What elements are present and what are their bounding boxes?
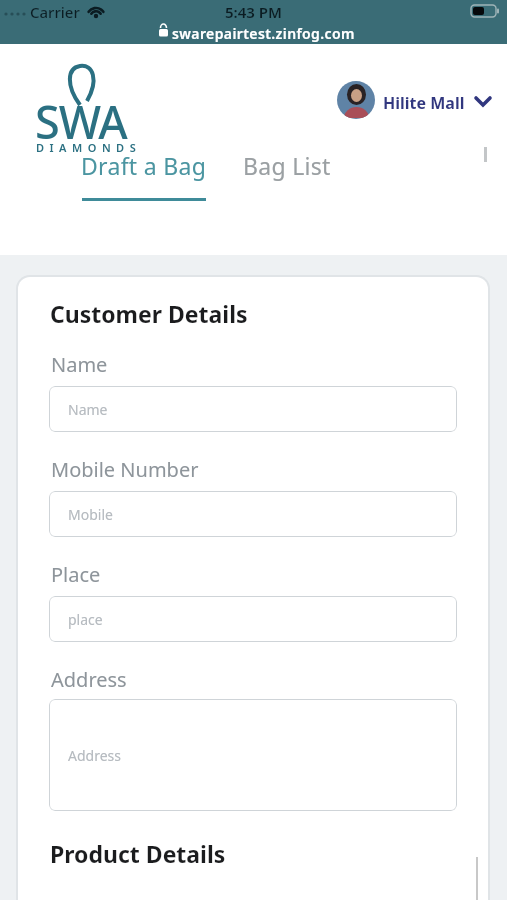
staticText: swarepairtest.zinfog.com [172, 24, 355, 43]
staticText: Hilite Mall [383, 92, 465, 114]
staticText: Draft a Bag [81, 150, 207, 181]
staticText: SWA [35, 91, 127, 152]
staticText: 5:43 PM [225, 2, 282, 22]
staticText: Mobile Number [51, 456, 199, 483]
staticText: Bag List [243, 150, 331, 181]
staticText: Place [51, 561, 101, 588]
staticText: Address [68, 746, 121, 765]
button[interactable]: Draft a Bag [74, 149, 214, 181]
staticText: Name [51, 351, 108, 378]
staticText: Customer Details [50, 298, 248, 329]
staticText: Address [51, 666, 127, 693]
staticText: Name [68, 400, 108, 419]
button[interactable]: Mobile [49, 491, 457, 537]
button[interactable] [337, 81, 375, 119]
staticText: Mobile [68, 505, 113, 524]
button[interactable]: place [49, 596, 457, 642]
staticText: Product Details [50, 838, 226, 869]
staticText: place [68, 610, 103, 629]
button[interactable]: Hilite Mall [383, 92, 465, 114]
staticText: DIAMONDS [36, 140, 142, 155]
button[interactable]: Address [49, 699, 457, 811]
button[interactable]: Name [49, 386, 457, 432]
button[interactable]: Bag List [237, 149, 337, 181]
staticText: Carrier [30, 2, 80, 22]
